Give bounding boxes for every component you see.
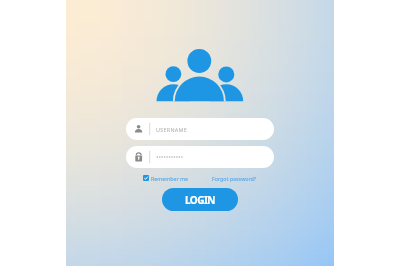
staticText: Remember me (151, 175, 188, 182)
staticText: USERNAME (156, 126, 188, 133)
button[interactable]: USERNAME (126, 118, 274, 140)
button[interactable] (126, 146, 274, 168)
staticText: LOGIN (185, 193, 215, 207)
button[interactable]: Forgot password? (212, 175, 257, 182)
button[interactable]: LOGIN (162, 188, 238, 211)
button[interactable]: Remember me (143, 172, 188, 184)
other: Users (152, 46, 248, 104)
